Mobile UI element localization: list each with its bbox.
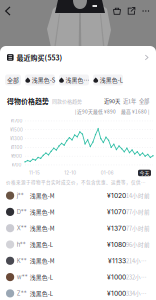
button[interactable]: K**: [0, 253, 156, 269]
staticText: 浅黑色-M: [30, 208, 55, 216]
staticText: 最高 ¥1680 |: [121, 108, 149, 115]
staticText: 11-15: [29, 170, 40, 176]
staticText: ¥1700: [10, 118, 22, 124]
staticText: ¥1000: [107, 289, 126, 297]
staticText: 同款价格趋势: [52, 97, 82, 105]
staticText: X**: [17, 225, 27, 232]
staticText: ¥1020: [107, 192, 126, 200]
button[interactable]: 近1年: [123, 97, 136, 105]
button[interactable]: Cart: [110, 4, 124, 18]
button[interactable]: 全部: [5, 74, 21, 85]
staticText: ¥900: [11, 153, 22, 159]
button[interactable]: h**: [0, 236, 156, 253]
staticText: 334小时前: [126, 289, 150, 297]
staticText: 浅黑色-M: [30, 224, 55, 232]
staticText: 77小时前: [126, 208, 150, 216]
staticText: ¥700: [11, 162, 21, 168]
staticText: ¥1000: [107, 273, 126, 281]
button[interactable]: Z**: [0, 285, 156, 300]
staticText: 最近购买(553): [17, 52, 63, 62]
staticText: 浅黑色-M: [30, 257, 55, 265]
staticText: 96小时前: [126, 240, 150, 248]
staticText: ¥1300: [10, 136, 23, 141]
button[interactable]: More: [139, 4, 153, 18]
staticText: D**: [17, 208, 27, 215]
button[interactable]: w**: [0, 269, 156, 285]
button[interactable]: 近90天: [104, 97, 120, 105]
staticText: K**: [17, 257, 27, 264]
staticText: 12-10: [64, 170, 76, 176]
staticText: h**: [17, 241, 26, 248]
button[interactable]: Share: [124, 4, 139, 18]
button[interactable]: 浅黑色-M: [59, 74, 89, 85]
staticText: ¥1100: [10, 145, 22, 150]
staticText: w**: [17, 274, 28, 281]
staticText: 浅黑色-S: [32, 76, 55, 84]
staticText: ¥1370: [107, 224, 126, 232]
staticText: ¥1080: [107, 240, 126, 249]
staticText: ¥1500: [10, 127, 23, 132]
staticText: 214小时前: [126, 257, 150, 265]
button[interactable]: 浅黑色-S: [25, 74, 55, 85]
button[interactable]: D**: [0, 204, 156, 220]
staticText: 浅黑色-M: [30, 191, 55, 200]
staticText: 浅黑色-L: [30, 289, 53, 298]
staticText: ¥1070: [107, 208, 126, 216]
staticText: 14小时前: [126, 191, 150, 200]
button[interactable]: X**: [0, 220, 156, 236]
staticText: 近1年: [123, 97, 136, 105]
staticText: ¥1133: [108, 257, 126, 265]
button[interactable]: 最近购买(553): [0, 53, 156, 61]
staticText: 近90天: [104, 97, 120, 105]
staticText: 01-06: [101, 170, 114, 176]
staticText: 今天: [139, 169, 149, 176]
staticText: 全部: [7, 76, 19, 84]
staticText: 全部: [139, 97, 149, 105]
staticText: Z**: [17, 290, 27, 297]
staticText: j**: [17, 192, 24, 199]
button[interactable]: j**: [0, 187, 156, 204]
staticText: 232小时前: [126, 273, 150, 281]
staticText: 浅黑色-L: [30, 273, 53, 281]
staticText: 浅黑色-M: [65, 76, 89, 84]
button[interactable]: Back: [0, 3, 16, 18]
staticText: | 近90天最低 ¥890: [75, 108, 116, 115]
staticText: 浅黑色-L: [100, 76, 123, 84]
button[interactable]: 全部: [139, 97, 149, 105]
staticText: 77小时前: [126, 224, 150, 232]
button[interactable]: 浅黑色-L: [93, 74, 123, 85]
staticText: 浅黑色-L: [30, 240, 53, 249]
staticText: 价格来源于得物平台实时成交价，不包含优惠、运费等，仅供参考: [6, 179, 150, 185]
staticText: 得物价格趋势: [7, 96, 49, 106]
